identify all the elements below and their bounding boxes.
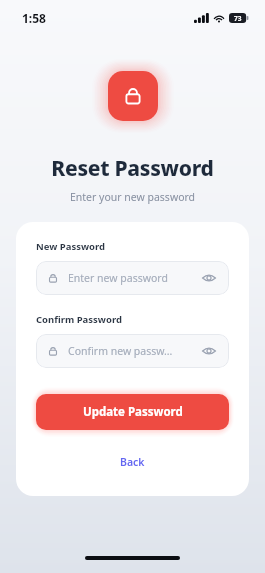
- staticText: Update Password: [83, 404, 183, 420]
- staticText: Enter new password: [68, 271, 200, 285]
- staticText: Confirm new passw…: [68, 344, 200, 358]
- button[interactable]: Update Password: [36, 394, 229, 430]
- button[interactable]: Show password: [200, 342, 218, 360]
- staticText: Reset Password: [0, 154, 265, 183]
- button[interactable]: Show password: [200, 269, 218, 287]
- button[interactable]: Confirm new passw…: [36, 334, 229, 368]
- staticText: Enter your new password: [0, 190, 265, 204]
- staticText: Back: [120, 455, 145, 469]
- button[interactable]: Enter new password: [36, 261, 229, 295]
- staticText: Confirm Password: [36, 313, 122, 326]
- staticText: New Password: [36, 240, 106, 253]
- button[interactable]: Back: [36, 452, 229, 472]
- staticText: 73: [234, 14, 242, 23]
- staticText: 1:58: [22, 10, 46, 26]
